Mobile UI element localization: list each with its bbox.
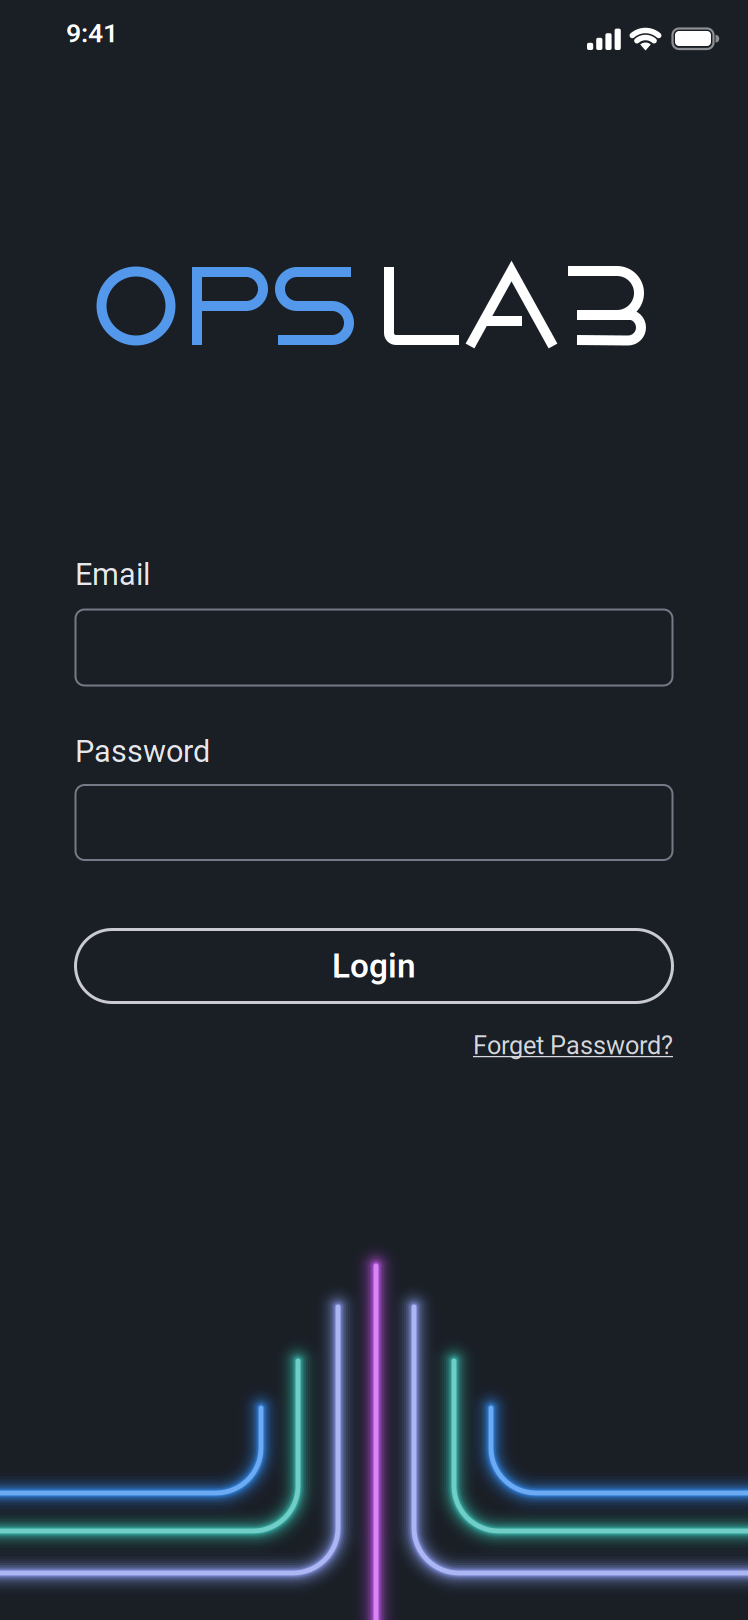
staticText: 9:41 [66, 18, 118, 48]
staticText: Forget Password? [473, 1031, 673, 1060]
staticText: Login [332, 947, 416, 985]
staticText: Email [75, 557, 150, 592]
staticText: Password [75, 734, 210, 769]
